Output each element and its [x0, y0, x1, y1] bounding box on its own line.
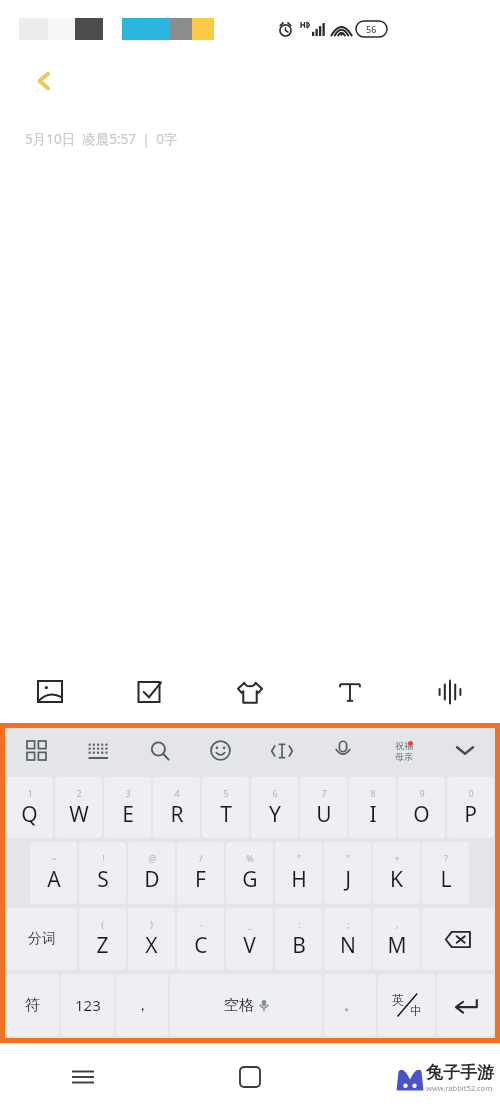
staticText: R [170, 800, 184, 829]
button[interactable]: Emoji [190, 728, 251, 773]
staticText: ; [347, 918, 350, 930]
staticText: ? [444, 852, 448, 864]
staticText: - [200, 918, 203, 930]
button[interactable]: 1 [6, 777, 53, 838]
staticText: N [340, 931, 356, 960]
staticText: 英 [392, 992, 404, 1007]
staticText: ) [150, 918, 153, 930]
button[interactable]: Insert image [0, 661, 100, 723]
staticText: 符 [25, 996, 40, 1015]
button[interactable]: Voice input [312, 728, 373, 773]
button[interactable]: 123 [61, 974, 114, 1036]
button[interactable]: Space [170, 974, 322, 1036]
button[interactable]: Back [18, 55, 70, 107]
button[interactable]: Recent apps [0, 1043, 166, 1111]
staticText: 6 [272, 787, 278, 799]
button[interactable]: 2 [55, 777, 102, 838]
button[interactable]: ? [422, 842, 469, 904]
button[interactable]: + [373, 842, 420, 904]
staticText: ~ [51, 852, 57, 864]
button[interactable]: " [324, 842, 371, 904]
staticText: A [47, 865, 61, 894]
staticText: H [291, 865, 307, 894]
button[interactable]: Voice [400, 661, 500, 723]
staticText: www.rabbit52.com [426, 1083, 493, 1093]
staticText: @ [148, 852, 157, 864]
staticText: : [298, 918, 301, 930]
staticText: W [69, 800, 89, 829]
staticText: 4 [174, 787, 180, 799]
staticText: 兔子手游 [426, 1062, 494, 1083]
staticText: ， [135, 996, 150, 1015]
button[interactable]: 7 [300, 777, 347, 838]
staticText: E [122, 800, 134, 829]
button[interactable]: , [373, 908, 420, 970]
button[interactable]: ) [128, 908, 175, 970]
staticText: 8 [370, 787, 376, 799]
button[interactable]: : [275, 908, 322, 970]
staticText: 空格 [224, 996, 254, 1015]
button[interactable]: @ [128, 842, 175, 904]
staticText: " [346, 852, 350, 864]
button[interactable]: / [177, 842, 224, 904]
staticText: D [144, 865, 160, 894]
staticText: T [220, 800, 232, 829]
button[interactable]: 。 [324, 974, 376, 1036]
button[interactable]: 5 [202, 777, 249, 838]
staticText: % [246, 852, 254, 864]
button[interactable]: 分词 [6, 908, 77, 970]
button[interactable]: Keyboard layouts [5, 728, 67, 773]
button[interactable]: Home [166, 1043, 333, 1111]
staticText: 3 [125, 787, 131, 799]
staticText: J [345, 865, 351, 894]
button[interactable]: " [275, 842, 322, 904]
button[interactable]: Enter [437, 974, 494, 1036]
staticText: F [195, 865, 206, 894]
button[interactable]: - [177, 908, 224, 970]
button[interactable]: Switch language [378, 974, 435, 1036]
button[interactable]: Search [129, 728, 190, 773]
button[interactable]: 3 [104, 777, 151, 838]
staticText: " [297, 852, 301, 864]
button[interactable]: ~ [30, 842, 77, 904]
button[interactable]: 4 [153, 777, 200, 838]
staticText: 分词 [28, 930, 56, 948]
button[interactable]: _ [226, 908, 273, 970]
staticText: 。 [344, 997, 357, 1013]
staticText: 祝福 [395, 740, 413, 751]
staticText: Y [269, 800, 281, 829]
button[interactable]: ; [324, 908, 371, 970]
staticText: 56 [366, 23, 377, 35]
button[interactable]: Text format [300, 661, 400, 723]
staticText: 0 [468, 787, 474, 799]
button[interactable]: % [226, 842, 273, 904]
staticText: / [199, 852, 203, 864]
button[interactable]: Cursor move [251, 728, 312, 773]
button[interactable]: Back [333, 1043, 500, 1111]
staticText: ! [102, 852, 105, 864]
staticText: 9 [419, 787, 425, 799]
button[interactable]: Style [200, 661, 300, 723]
button[interactable]: 9 [398, 777, 445, 838]
staticText: M [387, 931, 407, 960]
button[interactable]: 0 [447, 777, 494, 838]
staticText: O [413, 800, 430, 829]
button[interactable]: Checklist [100, 661, 200, 723]
button[interactable]: 8 [349, 777, 396, 838]
staticText: 1 [27, 787, 33, 799]
staticText: X [145, 931, 158, 960]
button[interactable]: ， [116, 974, 168, 1036]
button[interactable]: Blessing [373, 728, 434, 773]
button[interactable]: ( [79, 908, 126, 970]
staticText: ( [101, 918, 104, 930]
staticText: C [194, 931, 208, 960]
staticText: 7 [321, 787, 327, 799]
button[interactable]: ! [79, 842, 126, 904]
button[interactable]: Hide keyboard [434, 728, 495, 773]
staticText: 5月10日 凌晨5:57 ｜ 0字 [25, 130, 178, 148]
button[interactable]: 符 [6, 974, 59, 1036]
button[interactable]: Number pad [67, 728, 129, 773]
staticText: 中 [410, 1003, 422, 1018]
button[interactable]: 6 [251, 777, 298, 838]
button[interactable]: Backspace [422, 908, 494, 970]
